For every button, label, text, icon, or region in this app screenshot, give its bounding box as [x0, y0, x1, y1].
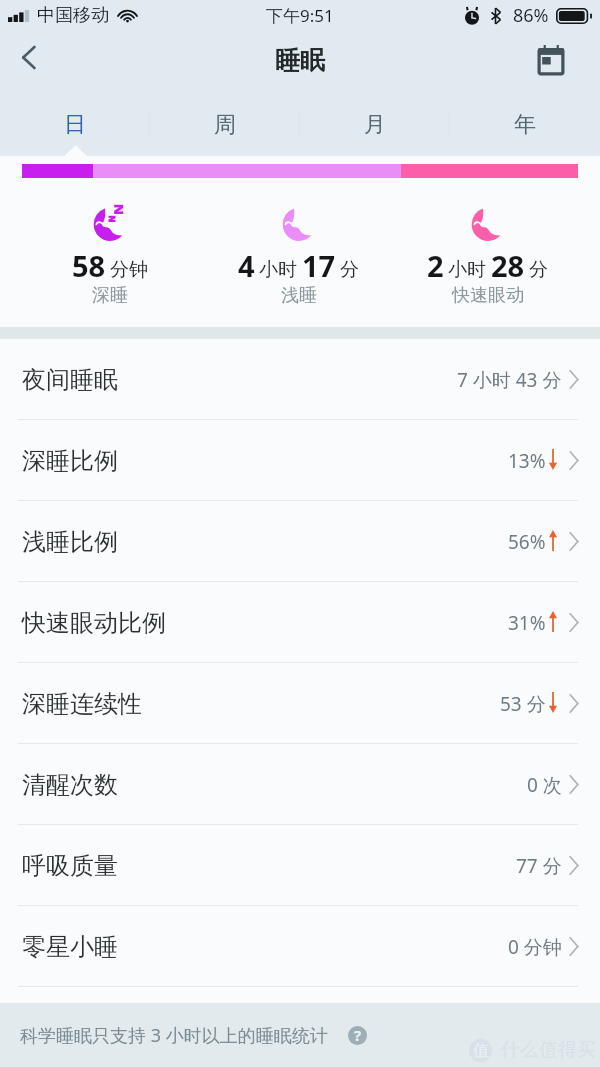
staticText: 86%	[513, 3, 549, 28]
staticText: 零星小睡	[22, 932, 118, 962]
staticText: 浅睡	[281, 284, 317, 307]
button[interactable]: 深睡比例	[0, 420, 600, 501]
button[interactable]: 快速眼动比例	[0, 582, 600, 663]
staticText: 17	[302, 246, 336, 285]
staticText: 2	[427, 246, 444, 285]
button[interactable]: Back	[0, 30, 58, 96]
staticText: 深睡	[92, 284, 128, 307]
staticText: 深睡连续性	[22, 689, 142, 719]
button[interactable]: Help	[348, 1026, 367, 1045]
button[interactable]: 呼吸质量	[0, 825, 600, 906]
staticText: 清醒次数	[22, 770, 118, 800]
button[interactable]: 年	[450, 96, 600, 156]
button[interactable]: 夜间睡眠	[0, 339, 600, 420]
staticText: 日	[64, 111, 86, 139]
staticText: 58	[72, 246, 106, 285]
staticText: 快速眼动比例	[22, 608, 166, 638]
staticText: 31%	[508, 610, 546, 636]
button[interactable]: 深睡连续性	[0, 663, 600, 744]
staticText: 值	[473, 1041, 489, 1061]
staticText: 0 分钟	[508, 934, 562, 960]
staticText: 分	[340, 258, 359, 282]
staticText: 56%	[508, 529, 546, 555]
staticText: 睡眠	[275, 45, 325, 76]
staticText: 深睡比例	[22, 446, 118, 476]
staticText: 夜间睡眠	[22, 365, 118, 395]
staticText: 小时	[448, 258, 486, 282]
staticText: 呼吸质量	[22, 851, 118, 881]
button[interactable]: 日	[0, 96, 150, 156]
button[interactable]: 浅睡比例	[0, 501, 600, 582]
button[interactable]: 月	[300, 96, 450, 156]
button[interactable]: 零星小睡	[0, 906, 600, 987]
button[interactable]: 周	[150, 96, 300, 156]
staticText: 什么值得买	[501, 1038, 596, 1062]
staticText: 28	[491, 246, 525, 285]
staticText: ?	[354, 1026, 362, 1044]
staticText: 快速眼动	[452, 284, 524, 307]
staticText: 周	[214, 111, 236, 139]
staticText: 中国移动	[37, 4, 109, 27]
staticText: 年	[514, 111, 536, 139]
button[interactable]: Calendar	[525, 30, 600, 96]
staticText: 77 分	[516, 853, 562, 879]
button[interactable]: 清醒次数	[0, 744, 600, 825]
staticText: 小时	[259, 258, 297, 282]
staticText: 浅睡比例	[22, 527, 118, 557]
staticText: 53 分	[500, 691, 546, 717]
staticText: 下午9:51	[266, 4, 334, 27]
staticText: 4	[238, 246, 255, 285]
staticText: 月	[364, 111, 386, 139]
staticText: 7 小时 43 分	[457, 367, 562, 393]
staticText: 分	[529, 258, 548, 282]
staticText: 0 次	[527, 772, 562, 798]
staticText: 13%	[508, 448, 546, 474]
staticText: 科学睡眠只支持 3 小时以上的睡眠统计	[20, 1023, 328, 1048]
staticText: 分钟	[110, 258, 148, 282]
